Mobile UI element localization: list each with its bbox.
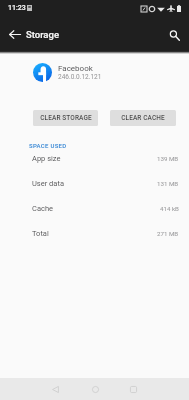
staticText: SPACE USED [29, 142, 67, 149]
staticText: App size [32, 154, 61, 163]
button[interactable]: Home [85, 379, 105, 399]
staticText: Total [32, 229, 49, 238]
staticText: 139 MB [157, 155, 179, 162]
staticText: Cache [32, 204, 53, 213]
staticText: 246.0.0.12.121 [58, 73, 102, 81]
staticText: User data [32, 179, 64, 188]
staticText: Facebook [58, 64, 93, 73]
button[interactable]: App size [0, 146, 189, 171]
button[interactable]: Total [0, 221, 189, 246]
button[interactable]: Cache [0, 196, 189, 221]
staticText: 11:23 [8, 4, 26, 12]
button[interactable]: Back [45, 379, 65, 399]
button[interactable]: Search [163, 24, 186, 47]
button[interactable]: Navigate up [3, 23, 26, 46]
staticText: Storage [26, 29, 59, 40]
button[interactable]: Recent apps [123, 379, 143, 399]
staticText: 414 kB [160, 205, 179, 212]
staticText: CLEAR CACHE [121, 114, 165, 122]
button[interactable]: CLEAR CACHE [110, 110, 176, 126]
staticText: CLEAR STORAGE [40, 114, 92, 122]
button[interactable]: User data [0, 171, 189, 196]
button[interactable]: CLEAR STORAGE [33, 110, 98, 126]
staticText: 271 MB [157, 230, 179, 237]
staticText: 131 MB [157, 180, 179, 187]
